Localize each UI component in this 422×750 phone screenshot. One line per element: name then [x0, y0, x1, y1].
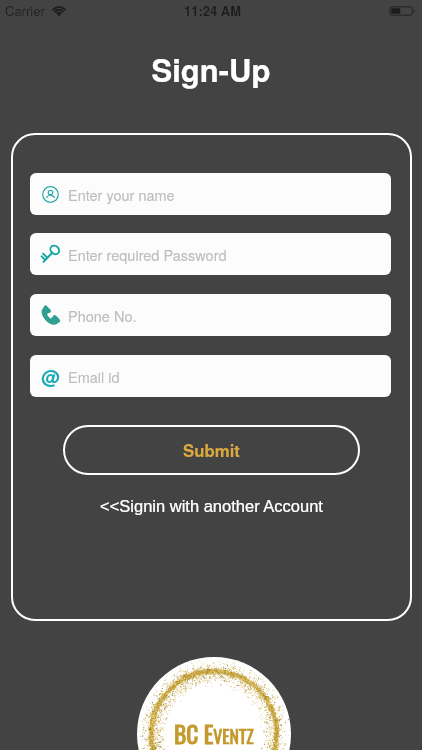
staticText: Sign-Up: [0, 47, 422, 91]
other: Password: [40, 244, 61, 265]
other: Name: [40, 184, 61, 205]
staticText: Submit: [183, 438, 240, 462]
button[interactable]: Password: [30, 233, 391, 275]
staticText: Email id: [68, 366, 120, 387]
staticText: @: [41, 363, 60, 390]
button[interactable]: Submit: [63, 425, 360, 475]
staticText: Enter your name: [68, 184, 175, 205]
button[interactable]: Name: [30, 173, 391, 215]
staticText: 11:24 AM: [184, 1, 242, 20]
button[interactable]: <<Signin with another Account: [11, 497, 412, 515]
staticText: Phone No.: [68, 305, 137, 326]
button[interactable]: Email: [30, 355, 391, 397]
staticText: Carrier: [5, 1, 45, 20]
staticText: BC EVENTZ: [174, 716, 254, 750]
button[interactable]: Phone: [30, 294, 391, 336]
other: Email: [40, 366, 61, 387]
other: Phone: [40, 305, 61, 326]
staticText: Enter required Password: [68, 244, 227, 265]
